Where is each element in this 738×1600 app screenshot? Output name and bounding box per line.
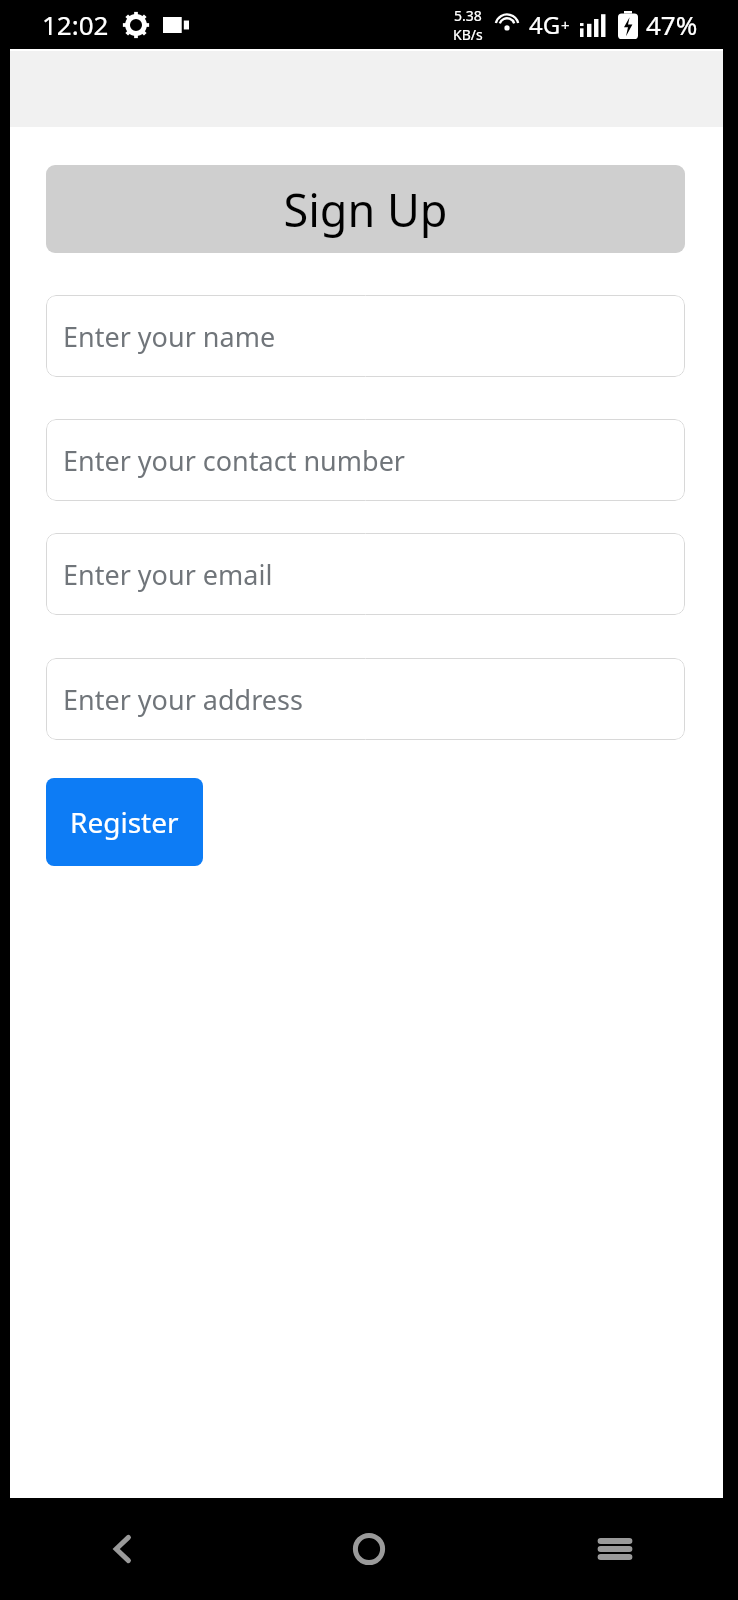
staticText: 5.38 — [454, 6, 482, 25]
staticText: Enter your email — [63, 556, 273, 593]
button[interactable]: Back — [0, 1498, 246, 1600]
button[interactable]: Home — [246, 1498, 492, 1600]
staticText: Sign Up — [283, 179, 448, 240]
button[interactable]: Enter your name — [46, 295, 685, 377]
staticText: Register — [70, 803, 179, 841]
button[interactable]: Enter your email — [46, 533, 685, 615]
staticText: KB/s — [453, 25, 483, 44]
button[interactable]: Enter your contact number — [46, 419, 685, 501]
button[interactable]: Register — [46, 778, 203, 866]
staticText: 4G — [529, 8, 561, 41]
staticText: Enter your contact number — [63, 442, 406, 479]
staticText: 47% — [646, 7, 698, 42]
staticText: Enter your address — [63, 681, 303, 718]
staticText: Enter your name — [63, 318, 276, 355]
button[interactable]: Enter your address — [46, 658, 685, 740]
button[interactable]: Recent apps — [492, 1498, 738, 1600]
staticText: + — [561, 15, 570, 35]
staticText: 12:02 — [42, 7, 109, 42]
button[interactable]: Sign Up — [46, 165, 685, 253]
